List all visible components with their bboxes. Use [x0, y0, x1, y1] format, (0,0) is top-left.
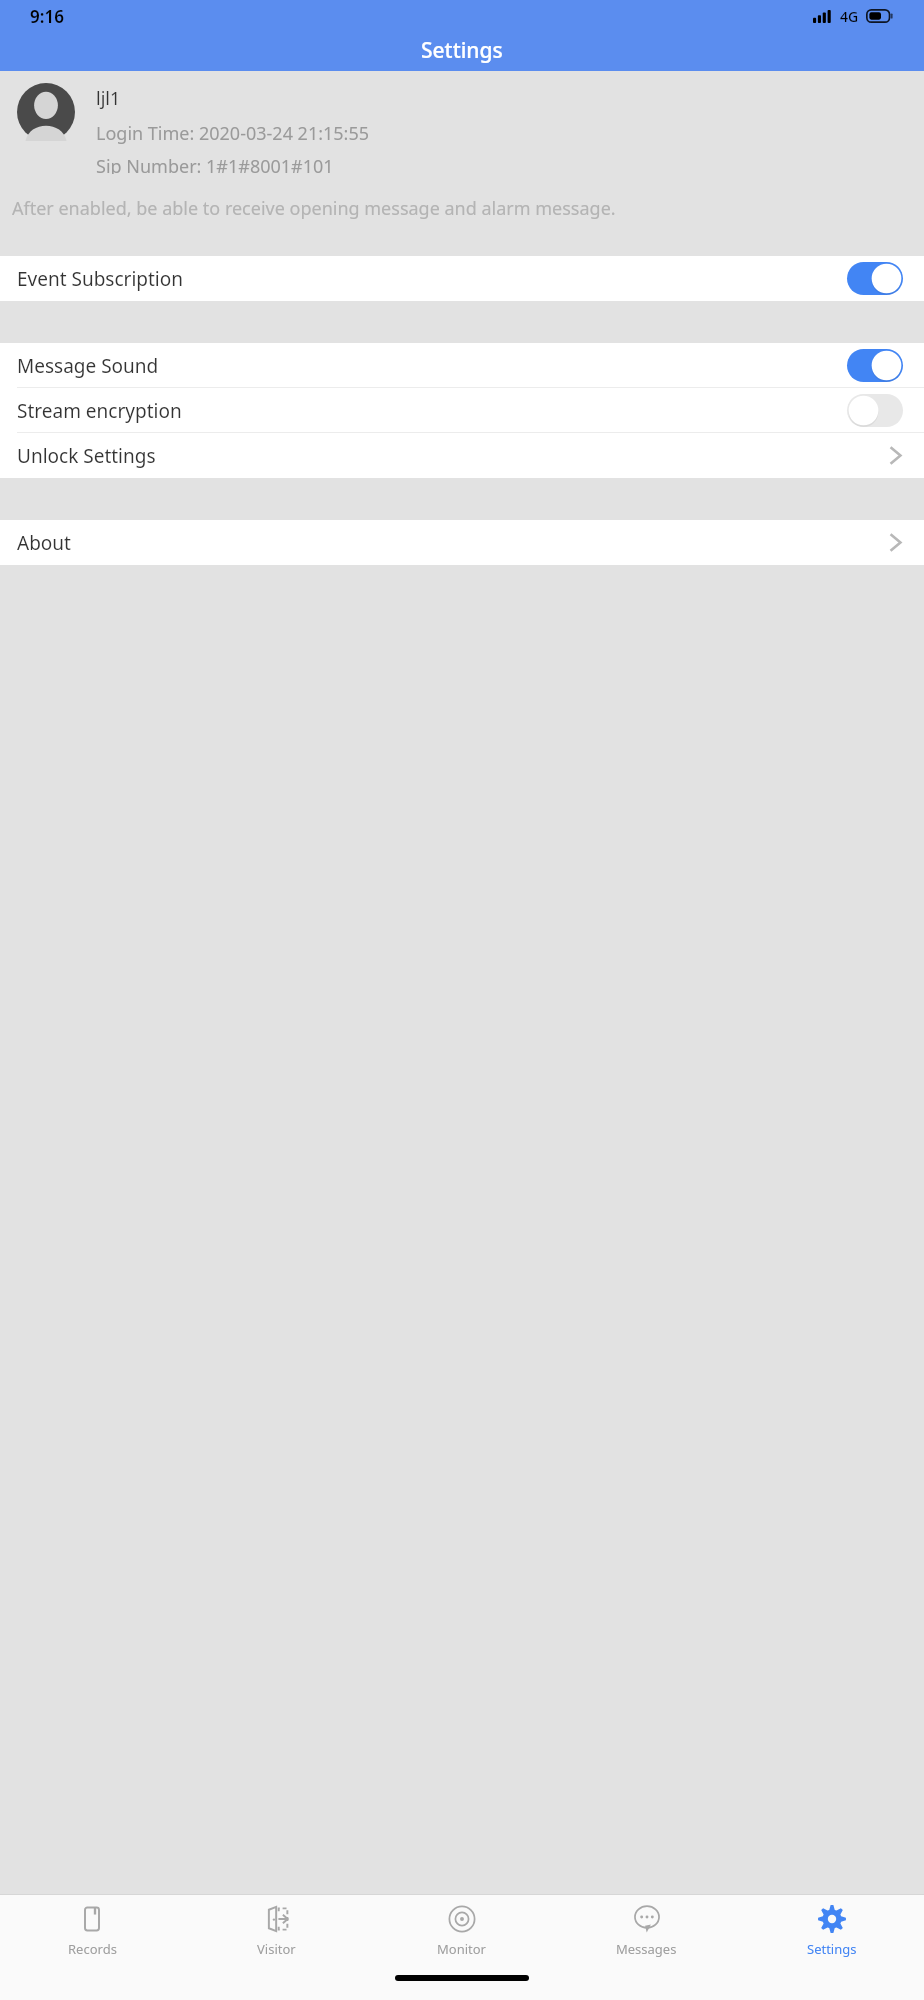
- button[interactable]: Records: [0, 1895, 184, 1967]
- staticText: After enabled, be able to receive openin…: [12, 196, 616, 221]
- staticText: Login Time: 2020-03-24 21:15:55: [96, 121, 370, 146]
- button[interactable]: Monitor: [369, 1895, 554, 1967]
- staticText: Stream encryption: [17, 398, 182, 424]
- staticText: 9:16: [30, 5, 64, 28]
- staticText: Message Sound: [17, 353, 159, 379]
- staticText: Settings: [807, 1940, 857, 1958]
- staticText: Unlock Settings: [17, 443, 156, 469]
- staticText: Sip Number: 1#1#8001#101: [96, 154, 334, 174]
- staticText: ljl1: [96, 86, 121, 111]
- button[interactable]: Event Subscription: [0, 256, 924, 301]
- staticText: About: [17, 530, 71, 556]
- other: Messages: [633, 1905, 661, 1933]
- button[interactable]: Settings: [739, 1895, 924, 1967]
- button[interactable]: Unlock Settings: [0, 433, 924, 478]
- other: Records: [78, 1905, 106, 1933]
- other: Monitor: [448, 1905, 476, 1933]
- button[interactable]: About: [0, 520, 924, 565]
- staticText: Visitor: [257, 1940, 296, 1958]
- button[interactable]: Stream encryption: [0, 388, 924, 433]
- other: Visitor: [263, 1905, 291, 1933]
- staticText: Records: [68, 1940, 117, 1958]
- staticText: Event Subscription: [17, 266, 183, 292]
- staticText: Monitor: [437, 1940, 486, 1958]
- staticText: 4G: [840, 7, 859, 26]
- button[interactable]: ljl1: [0, 71, 924, 174]
- other: Settings: [818, 1905, 846, 1933]
- button[interactable]: Message Sound: [0, 343, 924, 388]
- button[interactable]: Messages: [554, 1895, 739, 1967]
- staticText: Settings: [421, 36, 503, 65]
- button[interactable]: Visitor: [184, 1895, 369, 1967]
- staticText: Messages: [616, 1940, 677, 1958]
